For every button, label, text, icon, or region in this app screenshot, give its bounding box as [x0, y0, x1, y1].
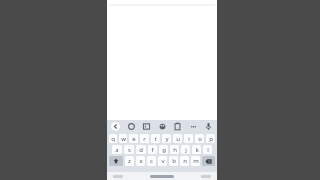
button[interactable]: r — [140, 134, 149, 143]
button[interactable]: x — [136, 156, 145, 166]
staticText: w — [121, 135, 126, 143]
staticText: h — [173, 146, 177, 154]
button[interactable]: p — [206, 134, 215, 143]
staticText: v — [161, 157, 165, 165]
button[interactable]: l — [203, 145, 212, 154]
staticText: p — [209, 135, 213, 143]
staticText: f — [151, 146, 154, 154]
staticText: t — [154, 135, 157, 143]
button[interactable]: Collapse keyboard — [110, 121, 121, 132]
staticText: a — [115, 146, 119, 154]
staticText: r — [143, 135, 146, 143]
button[interactable]: h — [170, 145, 179, 154]
button[interactable]: i — [184, 134, 193, 143]
button[interactable]: Back — [113, 175, 123, 178]
button[interactable]: Shift — [109, 156, 123, 166]
button[interactable]: w — [119, 134, 127, 143]
button[interactable]: v — [158, 156, 167, 166]
button[interactable]: Home — [150, 175, 174, 178]
staticText: s — [128, 146, 131, 154]
button[interactable]: e — [129, 134, 138, 143]
staticText: e — [132, 135, 136, 143]
button[interactable]: c — [147, 156, 156, 166]
button[interactable]: k — [192, 145, 201, 154]
button[interactable]: s — [124, 145, 134, 154]
button[interactable]: n — [180, 156, 189, 166]
button[interactable]: Stickers — [157, 121, 168, 132]
staticText: z — [128, 157, 131, 165]
staticText: x — [139, 157, 143, 165]
button[interactable]: d — [136, 145, 146, 154]
button[interactable]: Clipboard — [172, 121, 183, 132]
staticText: u — [176, 135, 180, 143]
staticText: b — [172, 157, 176, 165]
staticText: i — [188, 135, 190, 143]
button[interactable]: t — [151, 134, 160, 143]
staticText: y — [165, 135, 169, 143]
button[interactable]: Recents — [201, 175, 211, 178]
button[interactable]: b — [169, 156, 178, 166]
button[interactable]: y — [162, 134, 171, 143]
staticText: j — [185, 146, 187, 154]
button[interactable]: GIF — [141, 121, 152, 132]
button[interactable]: m — [191, 156, 200, 166]
staticText: d — [139, 146, 143, 154]
button[interactable]: z — [125, 156, 134, 166]
button[interactable]: g — [159, 145, 168, 154]
staticText: l — [207, 146, 209, 154]
button[interactable]: o — [195, 134, 204, 143]
button[interactable]: a — [112, 145, 122, 154]
button[interactable]: u — [173, 134, 182, 143]
staticText: q — [111, 135, 115, 143]
button[interactable]: Backspace — [202, 156, 215, 166]
staticText: m — [193, 157, 199, 165]
staticText: g — [162, 146, 166, 154]
button[interactable]: Search — [126, 121, 137, 132]
button[interactable]: q — [109, 134, 117, 143]
button[interactable]: Voice input — [203, 121, 214, 132]
staticText: n — [183, 157, 187, 165]
staticText: o — [198, 135, 202, 143]
button[interactable]: f — [148, 145, 157, 154]
staticText: c — [150, 157, 153, 165]
staticText: k — [195, 146, 199, 154]
button[interactable]: j — [181, 145, 190, 154]
button[interactable]: More options — [188, 121, 199, 132]
